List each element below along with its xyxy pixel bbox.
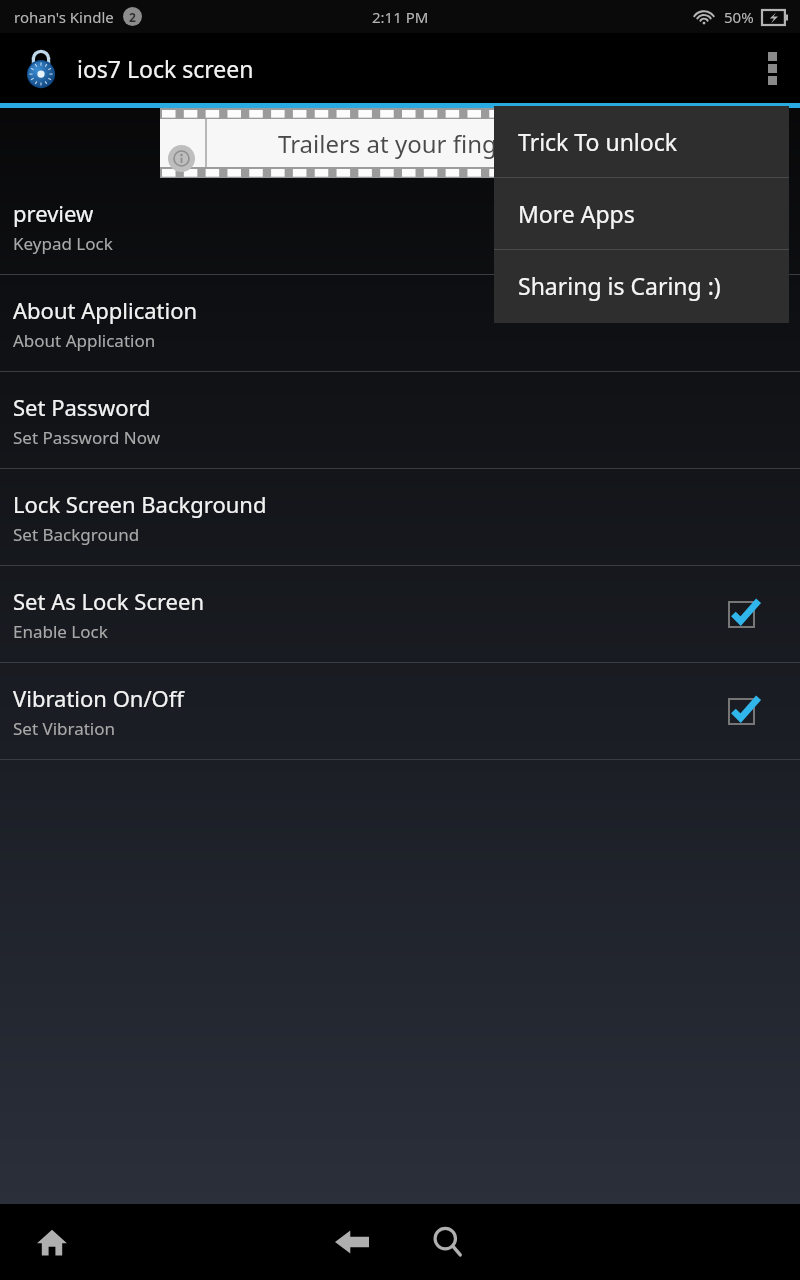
staticText: Keypad Lock — [13, 232, 113, 255]
staticText: Enable Lock — [13, 620, 108, 643]
button[interactable]: preview — [0, 178, 800, 275]
button[interactable]: Set As Lock Screen — [0, 566, 800, 663]
button[interactable]: Search — [416, 1210, 480, 1274]
button[interactable]: Advertisement — [0, 108, 800, 178]
staticText: Set Password — [13, 392, 151, 422]
button[interactable]: More options — [744, 33, 800, 103]
button[interactable]: Trick To unlock — [494, 106, 789, 177]
button[interactable]: Vibration On/Off — [0, 663, 800, 760]
staticText: Trailers at your fingertips — [278, 127, 562, 160]
staticText: ios7 Lock screen — [77, 53, 254, 84]
button[interactable]: Sharing is Caring :) — [494, 250, 789, 321]
staticText: rohan's Kindle — [14, 7, 114, 27]
staticText: 2 — [129, 9, 136, 25]
staticText: 50% — [724, 7, 754, 27]
staticText: Sharing is Caring :) — [518, 270, 721, 301]
button[interactable]: Set Password — [0, 372, 800, 469]
staticText: About Application — [13, 329, 156, 352]
staticText: Vibration On/Off — [13, 683, 184, 713]
staticText: Lock Screen Background — [13, 489, 267, 519]
staticText: Trick To unlock — [518, 126, 678, 157]
button[interactable]: Back — [320, 1210, 384, 1274]
staticText: About Application — [13, 295, 198, 325]
button[interactable]: Home — [20, 1210, 84, 1274]
staticText: preview — [13, 198, 94, 228]
staticText: 2:11 PM — [372, 7, 429, 27]
button[interactable]: About Application — [0, 275, 800, 372]
staticText: Set As Lock Screen — [13, 586, 205, 616]
staticText: Set Vibration — [13, 717, 116, 740]
staticText: More Apps — [518, 198, 635, 229]
staticText: Set Background — [13, 523, 140, 546]
staticText: Set Password Now — [13, 426, 161, 449]
button[interactable]: Lock Screen Background — [0, 469, 800, 566]
button[interactable]: More Apps — [494, 178, 789, 249]
